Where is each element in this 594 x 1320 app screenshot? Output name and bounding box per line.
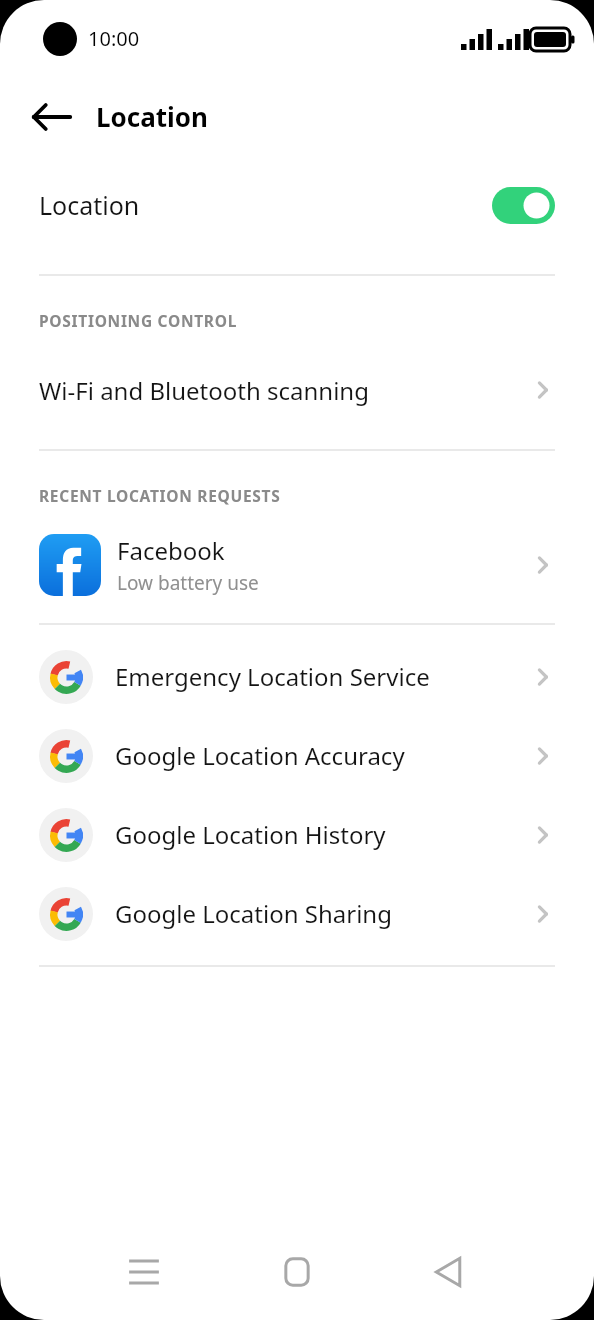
staticText: POSITIONING CONTROL (39, 310, 238, 331)
staticText: Google Location Sharing (115, 897, 392, 930)
button[interactable]: Back (28, 93, 76, 141)
button[interactable]: Google Location Accuracy (0, 716, 594, 795)
staticText: Google Location History (115, 818, 386, 851)
staticText: Location (39, 188, 140, 222)
staticText: Location (96, 99, 208, 134)
button[interactable]: Google Location History (0, 795, 594, 874)
staticText: RECENT LOCATION REQUESTS (39, 485, 281, 506)
staticText: Facebook (117, 534, 225, 567)
staticText: Emergency Location Service (115, 660, 430, 693)
staticText: 10:00 (88, 25, 140, 52)
button[interactable]: Home (266, 1241, 328, 1303)
button[interactable]: Google Location Sharing (0, 874, 594, 953)
button[interactable]: Location (0, 162, 594, 248)
staticText: Wi-Fi and Bluetooth scanning (39, 374, 369, 407)
button[interactable]: Facebook (0, 518, 594, 612)
staticText: Google Location Accuracy (115, 739, 405, 772)
button[interactable]: Wi-Fi and Bluetooth scanning (0, 359, 594, 421)
button[interactable]: Back (419, 1241, 481, 1303)
button[interactable]: Emergency Location Service (0, 637, 594, 716)
button[interactable]: Recent apps (113, 1241, 175, 1303)
staticText: Low battery use (117, 570, 259, 596)
